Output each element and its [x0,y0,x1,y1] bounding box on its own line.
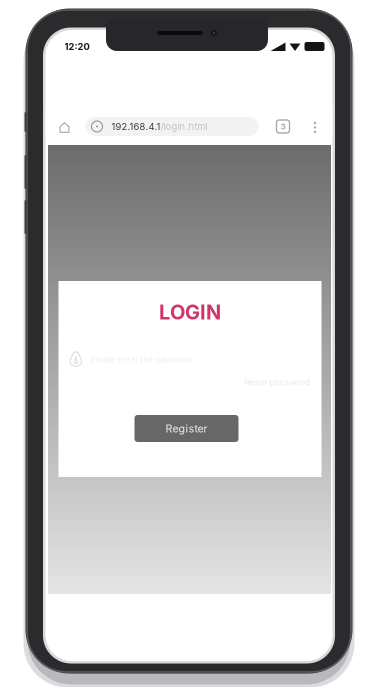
staticText: LOGIN [159,300,221,324]
staticText: 3 [280,122,285,131]
staticText: 192.168.4.1 [111,121,160,132]
button[interactable]: 192.168.4.1 [85,117,258,136]
staticText: /login.html [160,121,207,132]
staticText: 12:20 [64,41,89,52]
button[interactable]: Tabs [270,114,295,139]
staticText: Reset password [244,377,309,387]
button[interactable]: Home [52,115,76,140]
staticText: Register [165,422,207,435]
staticText: Please enter the password [90,355,191,364]
button[interactable]: Reset password [69,377,309,387]
button[interactable]: More options [306,114,323,141]
button[interactable]: Register [134,415,238,442]
